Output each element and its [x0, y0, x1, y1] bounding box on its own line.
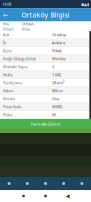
staticText: 06	[52, 112, 56, 117]
button[interactable]: Back	[0, 8, 12, 21]
staticText: 13:08	[2, 2, 11, 7]
staticText: Polatlı	[52, 48, 62, 53]
staticText: İli	[3, 40, 6, 45]
staticText: Ortaköy Bilgisi	[21, 11, 69, 19]
staticText: Plaka	[3, 112, 12, 117]
staticText: Posta Kodu	[3, 104, 21, 109]
staticText: Detaylı Bilgi	[22, 21, 34, 31]
button[interactable]: Haritada Göster	[0, 119, 91, 129]
staticText: 28 km²	[52, 80, 64, 85]
staticText: ●▲▮	[81, 2, 89, 6]
staticText: Mevkii	[3, 96, 15, 101]
button[interactable]: My location	[36, 177, 55, 190]
staticText: Yüzölçümü	[3, 80, 22, 85]
button[interactable]: Directions	[73, 177, 91, 190]
staticText: 860 m	[52, 88, 63, 93]
staticText: Ova	[52, 96, 59, 101]
staticText: ◀	[65, 193, 69, 199]
staticText: Haritada Göster	[30, 121, 60, 127]
staticText: Adı	[3, 32, 9, 37]
button[interactable]: Köy Bilgisi	[3, 21, 18, 31]
staticText: 06900	[52, 104, 62, 109]
staticText: Köy Bilgisi	[3, 21, 14, 31]
button[interactable]: Detaylı Bilgi	[22, 21, 38, 31]
staticText: İlçesi	[3, 48, 12, 53]
staticText: Ortaköy	[52, 32, 66, 37]
staticText: ←	[3, 11, 9, 19]
staticText: Bağlı Olduğu Belde	[3, 56, 36, 61]
staticText: Rakım	[3, 88, 14, 93]
staticText: Mahalle Sayısı	[3, 64, 28, 69]
staticText: Nüfus	[3, 72, 13, 77]
button[interactable]: Home	[34, 190, 56, 202]
button[interactable]: Back	[56, 190, 78, 202]
button[interactable]: Recent apps	[12, 190, 34, 202]
staticText: Ankara	[52, 40, 65, 45]
staticText: 1.042	[52, 72, 61, 77]
staticText: 3	[52, 64, 54, 69]
button[interactable]: Zoom out	[18, 177, 36, 190]
button[interactable]: Map layers	[55, 177, 73, 190]
button[interactable]: Zoom in	[0, 177, 18, 190]
staticText: Merkez	[52, 56, 66, 61]
